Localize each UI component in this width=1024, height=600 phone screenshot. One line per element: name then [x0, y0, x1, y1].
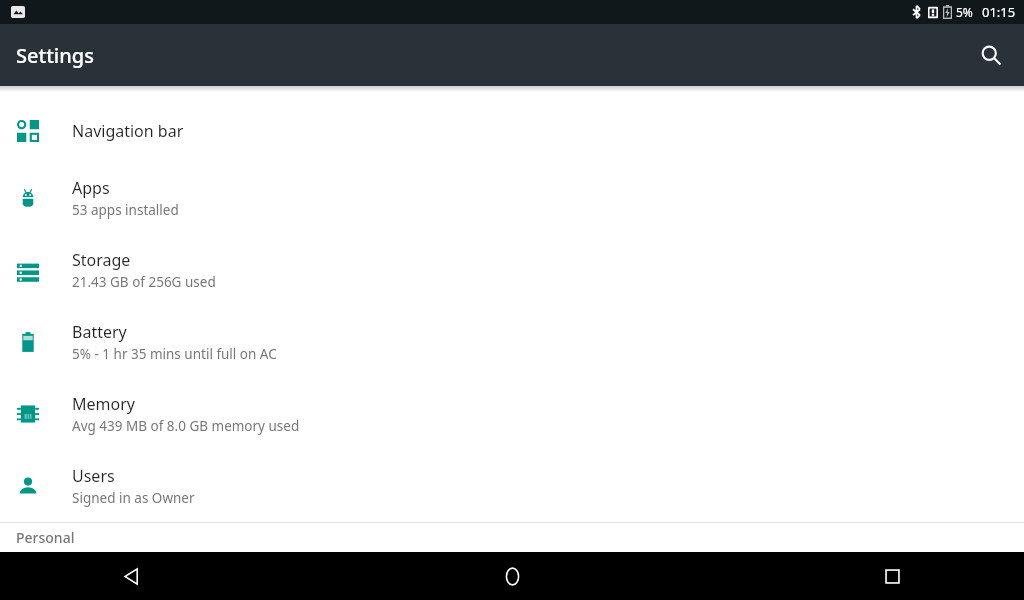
button[interactable]: Storage	[0, 234, 1024, 306]
staticText: Navigation bar	[72, 120, 184, 142]
button[interactable]: Users	[0, 450, 1024, 522]
button[interactable]: Home	[488, 552, 536, 600]
button[interactable]: Recent apps	[868, 552, 916, 600]
staticText: Users	[72, 465, 115, 487]
staticText: Memory	[72, 393, 135, 415]
staticText: Signed in as Owner	[72, 489, 195, 507]
staticText: Personal	[16, 528, 75, 547]
staticText: Apps	[72, 177, 110, 199]
button[interactable]: Search	[967, 31, 1015, 79]
staticText: 5% - 1 hr 35 mins until full on AC	[72, 345, 277, 363]
staticText: Avg 439 MB of 8.0 GB memory used	[72, 417, 300, 435]
staticText: Storage	[72, 249, 131, 271]
button[interactable]: Memory	[0, 378, 1024, 450]
button[interactable]: Back	[107, 552, 155, 600]
button[interactable]: Navigation bar	[0, 100, 1024, 162]
button[interactable]: Battery	[0, 306, 1024, 378]
button[interactable]: Apps	[0, 162, 1024, 234]
staticText: Battery	[72, 321, 127, 343]
staticText: 53 apps installed	[72, 201, 179, 219]
staticText: 01:15	[982, 3, 1016, 21]
staticText: 5%	[956, 4, 973, 20]
staticText: Settings	[16, 42, 94, 69]
staticText: 21.43 GB of 256G used	[72, 273, 216, 291]
